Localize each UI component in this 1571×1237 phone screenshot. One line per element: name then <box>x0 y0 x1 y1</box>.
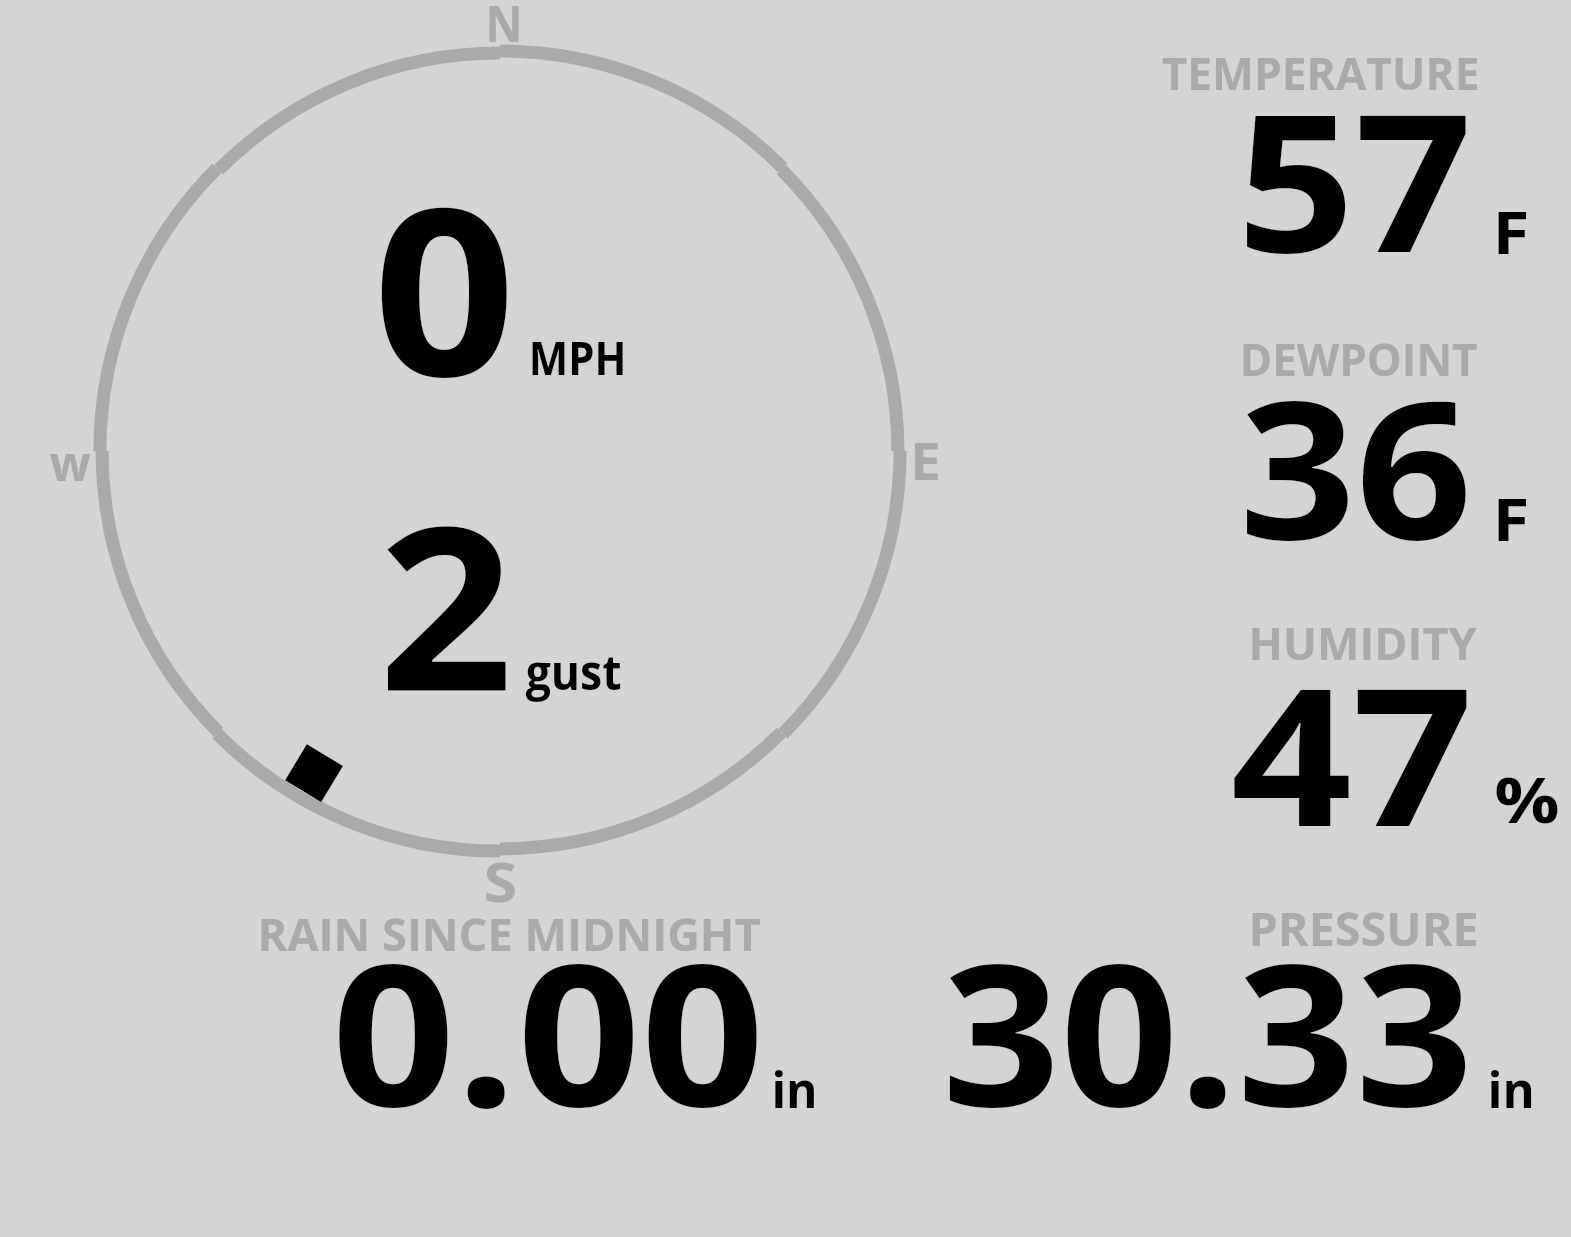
button[interactable]: Wind 0 miles per hour, gusting 2, direct… <box>52 40 948 920</box>
button[interactable]: Pressure 30.33 inches <box>900 900 1560 1130</box>
button[interactable]: Dew point 36 degrees Fahrenheit <box>1000 320 1560 585</box>
button[interactable]: Temperature 57 degrees Fahrenheit <box>1000 30 1560 295</box>
button[interactable]: Rain since midnight 0.00 inches <box>200 900 840 1130</box>
button[interactable]: Humidity 47 percent <box>1000 605 1560 870</box>
